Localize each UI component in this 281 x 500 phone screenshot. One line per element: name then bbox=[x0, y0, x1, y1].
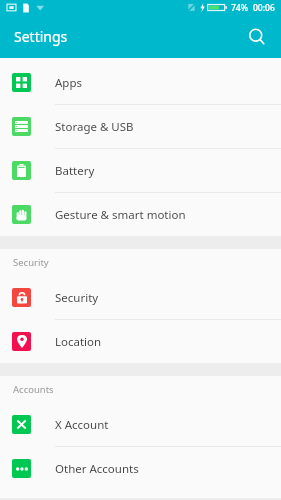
staticText: Security bbox=[55, 290, 99, 306]
staticText: Storage & USB bbox=[55, 119, 134, 135]
button[interactable]: Battery bbox=[0, 149, 281, 192]
button[interactable]: Location bbox=[0, 320, 281, 363]
staticText: X Account bbox=[55, 417, 109, 433]
button[interactable]: Other Accounts bbox=[0, 447, 281, 490]
staticText: Location bbox=[55, 334, 102, 350]
button[interactable]: X Account bbox=[0, 403, 281, 446]
button[interactable]: Apps bbox=[0, 61, 281, 104]
staticText: Other Accounts bbox=[55, 461, 139, 477]
staticText: 74% bbox=[231, 2, 248, 14]
staticText: Gesture & smart motion bbox=[55, 207, 186, 223]
staticText: Apps bbox=[55, 75, 83, 91]
staticText: Settings bbox=[14, 27, 68, 46]
button[interactable]: Storage & USB bbox=[0, 105, 281, 148]
staticText: Accounts bbox=[13, 383, 54, 396]
staticText: 00:06 bbox=[253, 2, 275, 14]
staticText: Security bbox=[13, 256, 49, 269]
staticText: Battery bbox=[55, 163, 95, 179]
button[interactable]: Search bbox=[242, 22, 272, 52]
button[interactable]: Gesture & smart motion bbox=[0, 193, 281, 236]
button[interactable]: Security bbox=[0, 276, 281, 319]
